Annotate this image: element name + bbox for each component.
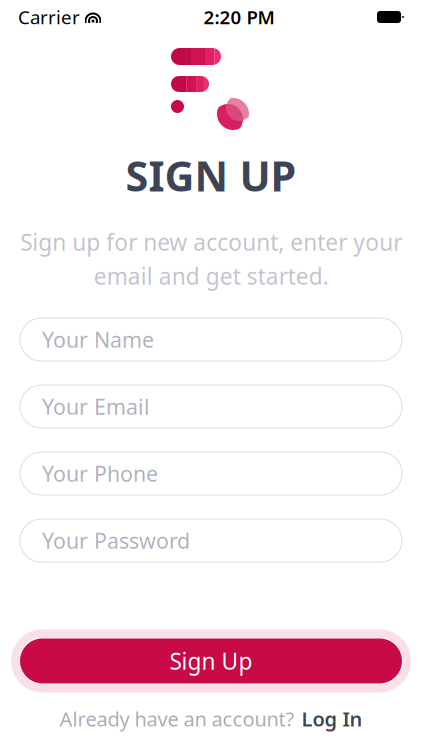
- staticText: Sign up for new account, enter your emai…: [20, 227, 402, 291]
- staticText: Carrier: [18, 5, 80, 29]
- button[interactable]: Log In: [301, 705, 362, 732]
- staticText: Log In: [301, 705, 362, 732]
- staticText: Your Email: [42, 392, 150, 421]
- staticText: 2:20 PM: [203, 5, 274, 29]
- staticText: SIGN UP: [125, 148, 296, 203]
- staticText: Sign Up: [169, 646, 252, 676]
- staticText: Your Password: [42, 526, 190, 555]
- staticText: Your Name: [42, 325, 154, 354]
- button[interactable]: Sign Up: [20, 638, 402, 683]
- staticText: Already have an account?: [59, 705, 294, 732]
- button[interactable]: Your Email: [20, 385, 402, 428]
- button[interactable]: Your Name: [20, 318, 402, 361]
- staticText: Your Phone: [42, 459, 158, 488]
- button[interactable]: Your Password: [20, 519, 402, 562]
- button[interactable]: Your Phone: [20, 452, 402, 495]
